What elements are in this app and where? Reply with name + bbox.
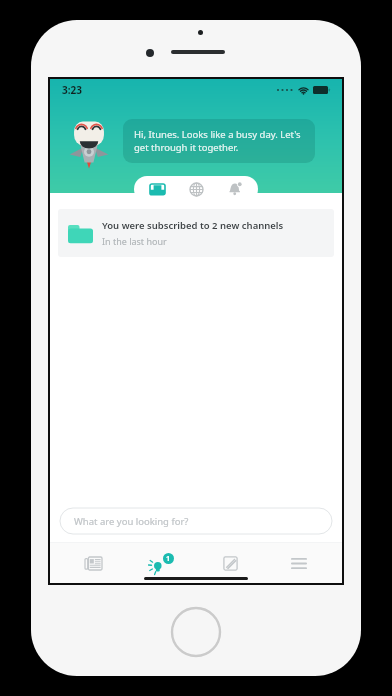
button[interactable]: Notifications bbox=[219, 176, 251, 202]
button[interactable]: News bbox=[67, 543, 119, 583]
button[interactable]: Inbox bbox=[141, 176, 173, 202]
button[interactable]: Discover bbox=[180, 176, 212, 202]
staticText: 1 bbox=[166, 554, 171, 564]
staticText: You were subscribed to 2 new channels bbox=[102, 219, 284, 232]
button[interactable]: Menu bbox=[273, 543, 325, 583]
button[interactable]: Compose bbox=[204, 543, 256, 583]
staticText: Hi, Itunes. Looks like a busy day. Let's… bbox=[134, 128, 304, 154]
button[interactable]: You were subscribed to 2 new channels bbox=[58, 209, 334, 257]
button[interactable]: Ideas, 1 new bbox=[136, 543, 188, 583]
staticText: 3:23 bbox=[62, 83, 82, 97]
staticText: In the last hour bbox=[102, 235, 167, 247]
button[interactable]: What are you looking for? bbox=[60, 508, 332, 534]
staticText: What are you looking for? bbox=[74, 515, 189, 528]
